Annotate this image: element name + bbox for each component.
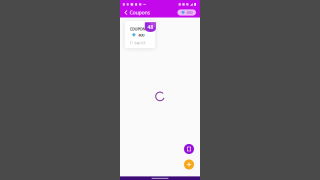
- staticText: 400: [186, 10, 192, 15]
- button[interactable]: Offers: [184, 144, 194, 154]
- button[interactable]: 400: [177, 9, 196, 16]
- staticText: 400: [138, 32, 144, 38]
- staticText: 31 days left: [129, 41, 145, 45]
- staticText: 48: [147, 23, 153, 31]
- button[interactable]: Scan: [184, 159, 194, 169]
- staticText: COUPON: [129, 26, 145, 31]
- staticText: Coupons: [129, 9, 150, 16]
- button[interactable]: Back: [122, 7, 129, 17]
